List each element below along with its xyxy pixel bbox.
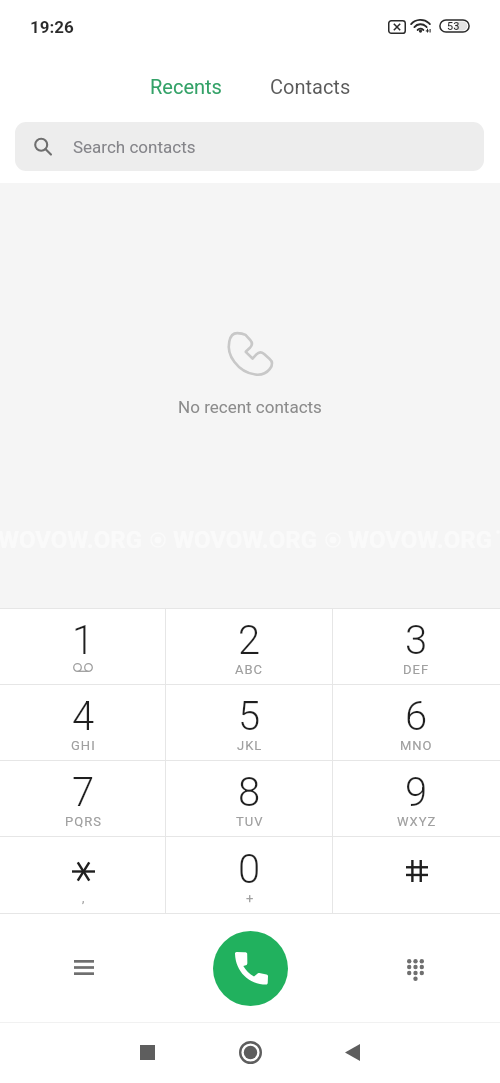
staticText: 8 xyxy=(238,769,261,816)
button[interactable]: 1 xyxy=(0,609,166,684)
button[interactable]: Call xyxy=(213,931,288,1006)
staticText: 7 xyxy=(72,769,95,816)
staticText: Recents xyxy=(150,75,222,98)
staticText: 4 xyxy=(72,693,95,740)
button[interactable]: Contacts xyxy=(254,64,367,109)
staticText: 5 xyxy=(238,693,261,740)
button[interactable]: Recents xyxy=(134,64,238,109)
staticText: 0 xyxy=(238,846,261,893)
staticText: 19:26 xyxy=(30,17,74,37)
button[interactable]: 2 xyxy=(166,609,333,684)
staticText: PQRS xyxy=(65,814,102,829)
staticText: No recent contacts xyxy=(0,397,500,417)
button[interactable]: Home xyxy=(222,1024,278,1080)
button[interactable]: Dialpad xyxy=(387,942,443,998)
button[interactable]: Call log xyxy=(56,939,112,995)
button[interactable] xyxy=(333,837,500,913)
button[interactable]: 9 xyxy=(333,761,500,836)
staticText: 1 xyxy=(72,617,95,664)
staticText: 6 xyxy=(405,693,428,740)
button[interactable]: Search contacts xyxy=(15,122,484,171)
staticText: 2 xyxy=(238,617,261,664)
staticText: 53 xyxy=(447,20,460,33)
staticText: Search contacts xyxy=(73,137,196,157)
staticText: GHI xyxy=(71,738,96,753)
button[interactable]: 8 xyxy=(166,761,333,836)
button[interactable]: , xyxy=(0,837,166,913)
button[interactable]: 6 xyxy=(333,685,500,760)
staticText: Contacts xyxy=(270,75,351,98)
staticText: ABC xyxy=(235,662,264,677)
button[interactable]: 7 xyxy=(0,761,166,836)
button[interactable]: 0 xyxy=(166,837,333,913)
button[interactable]: 3 xyxy=(333,609,500,684)
staticText: WXYZ xyxy=(397,814,437,829)
button[interactable]: 4 xyxy=(0,685,166,760)
staticText: TUV xyxy=(236,814,264,829)
staticText: 9 xyxy=(405,769,428,816)
staticText: 3 xyxy=(405,617,428,664)
button[interactable]: Back xyxy=(324,1024,380,1080)
staticText: , xyxy=(82,891,85,905)
staticText: DEF xyxy=(403,662,430,677)
button[interactable]: Recent apps xyxy=(119,1024,175,1080)
staticText: MNO xyxy=(400,738,433,753)
staticText: + xyxy=(246,891,254,906)
button[interactable]: 5 xyxy=(166,685,333,760)
staticText: JKL xyxy=(237,738,263,753)
